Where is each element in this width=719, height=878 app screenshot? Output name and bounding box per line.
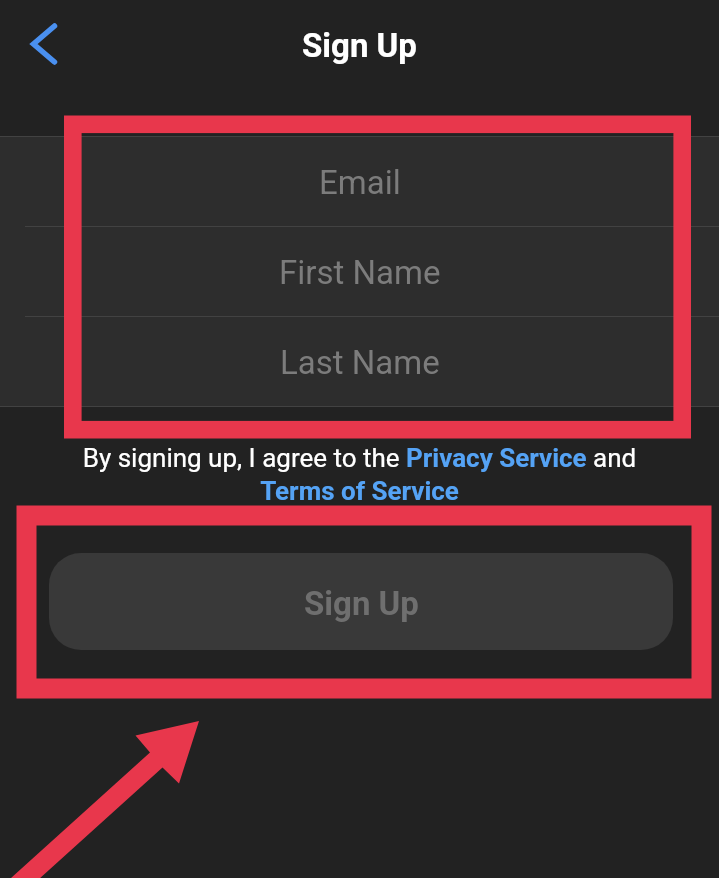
button[interactable]: Sign Up — [49, 553, 673, 650]
staticText: First Name — [279, 253, 441, 292]
button[interactable]: Last Name — [0, 317, 719, 406]
staticText: Sign Up — [302, 26, 417, 65]
staticText: By signing up, I agree to the Privacy Se… — [70, 443, 649, 506]
button[interactable]: Email — [0, 137, 719, 226]
button[interactable]: First Name — [0, 227, 719, 316]
staticText: Last Name — [280, 343, 440, 382]
staticText: Sign Up — [304, 584, 419, 623]
button[interactable]: Back — [12, 12, 76, 76]
staticText: Email — [319, 163, 401, 202]
